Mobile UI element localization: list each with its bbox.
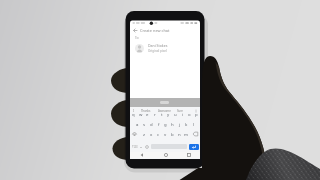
staticText: Dani Stokes — [148, 43, 168, 48]
staticText: To: — [135, 36, 140, 40]
button[interactable]: w — [137, 110, 144, 118]
staticText: o — [188, 111, 191, 117]
button[interactable]: Recents — [177, 152, 200, 158]
staticText: h — [171, 121, 174, 127]
staticText: g — [164, 121, 167, 127]
button[interactable]: Back — [130, 26, 140, 35]
button[interactable]: m — [183, 130, 190, 138]
staticText: q — [132, 111, 135, 117]
button[interactable]: Home — [154, 152, 177, 158]
button[interactable]: t — [158, 110, 165, 118]
button[interactable]: u — [172, 110, 179, 118]
staticText: Sure — [177, 109, 183, 113]
button[interactable]: j — [176, 120, 183, 128]
button[interactable]: d — [148, 120, 155, 128]
button[interactable]: b — [169, 130, 176, 138]
staticText: I — [133, 109, 134, 113]
button[interactable]: Backspace — [191, 130, 200, 138]
button[interactable]: Awesome — [158, 109, 171, 113]
button[interactable]: Thanks — [141, 109, 151, 113]
staticText: p — [195, 111, 198, 117]
button[interactable]: h — [169, 120, 176, 128]
button[interactable]: Comma — [138, 142, 144, 151]
staticText: b — [171, 131, 174, 137]
button[interactable]: Back — [130, 152, 154, 158]
button[interactable]: ?123 — [131, 142, 138, 151]
button[interactable]: n — [176, 130, 183, 138]
staticText: r — [154, 111, 156, 117]
button[interactable]: p — [193, 110, 200, 118]
staticText: f — [158, 121, 160, 127]
button[interactable]: x — [148, 130, 155, 138]
button[interactable]: I — [133, 109, 134, 113]
staticText: z — [143, 131, 146, 137]
button[interactable]: k — [183, 120, 190, 128]
staticText: a — [136, 121, 139, 127]
staticText: d — [150, 121, 153, 127]
staticText: e — [146, 111, 149, 117]
button[interactable]: o — [186, 110, 193, 118]
button[interactable]: Enter — [189, 144, 199, 150]
button[interactable]: e — [144, 110, 151, 118]
staticText: t — [161, 111, 163, 117]
staticText: l — [193, 121, 195, 127]
button[interactable]: Dani Stokes — [130, 42, 200, 54]
staticText: Create new chat — [140, 28, 170, 33]
staticText: v — [164, 131, 167, 137]
staticText: i — [182, 111, 184, 117]
staticText: x — [150, 131, 153, 137]
staticText: Thanks — [141, 109, 151, 113]
button[interactable]: a — [134, 120, 141, 128]
staticText: j — [179, 121, 181, 127]
button[interactable]: s — [141, 120, 148, 128]
button[interactable]: c — [155, 130, 162, 138]
staticText: s — [143, 121, 146, 127]
staticText: Awesome — [158, 109, 171, 113]
button[interactable]: f — [155, 120, 162, 128]
button[interactable]: v — [162, 130, 169, 138]
button[interactable]: r — [151, 110, 158, 118]
button[interactable]: Shift — [130, 130, 139, 138]
button[interactable]: q — [130, 110, 137, 118]
button[interactable]: g — [162, 120, 169, 128]
staticText: n — [178, 131, 181, 137]
staticText: Original pixel — [148, 49, 167, 53]
staticText: ?123 — [132, 145, 138, 149]
staticText: w — [139, 111, 143, 117]
button[interactable]: y — [165, 110, 172, 118]
button[interactable]: Emoji — [144, 142, 150, 151]
staticText: m — [184, 131, 189, 137]
staticText: k — [185, 121, 188, 127]
staticText: c — [157, 131, 160, 137]
button[interactable]: Sure — [177, 109, 183, 113]
button[interactable]: i — [179, 110, 186, 118]
button[interactable]: More — [194, 109, 198, 113]
button[interactable]: z — [141, 130, 148, 138]
staticText: y — [167, 111, 170, 117]
staticText: u — [174, 111, 177, 117]
button[interactable]: l — [190, 120, 197, 128]
